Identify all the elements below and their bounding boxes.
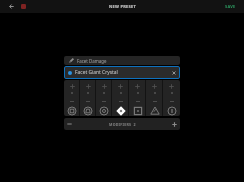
button[interactable]: Facet Giant Crystal <box>64 66 180 79</box>
button[interactable]: Facet Damage <box>64 56 180 65</box>
button[interactable] <box>80 80 96 116</box>
button[interactable]: Add modifier <box>169 118 180 130</box>
button[interactable]: Remove <box>168 67 179 78</box>
button[interactable] <box>64 80 80 116</box>
staticText: Facet Damage <box>77 58 107 64</box>
staticText: NEW PRESET <box>109 4 136 9</box>
button[interactable]: Record <box>17 0 30 13</box>
button[interactable]: Remove modifier <box>64 118 75 130</box>
button[interactable] <box>96 80 112 116</box>
staticText: MODIFIERS 2 <box>109 122 136 127</box>
button[interactable] <box>146 80 163 116</box>
staticText: SAVE <box>225 4 236 9</box>
button[interactable]: SAVE <box>222 2 239 11</box>
button[interactable]: Back <box>5 0 18 13</box>
button[interactable] <box>129 80 146 116</box>
staticText: Facet Giant Crystal <box>75 69 118 76</box>
button[interactable] <box>163 80 180 116</box>
button[interactable] <box>112 80 129 116</box>
